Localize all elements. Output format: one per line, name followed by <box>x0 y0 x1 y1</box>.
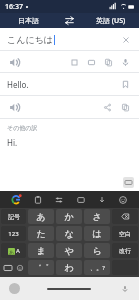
staticText: 改行 <box>119 247 131 255</box>
button[interactable]: 空白 <box>112 226 138 241</box>
staticText: ゛゜ <box>34 263 49 272</box>
staticText: わ <box>64 262 74 273</box>
button[interactable]: Keyboard tool 1 <box>30 192 45 207</box>
staticText: さ <box>92 211 102 222</box>
staticText: A <box>16 247 20 255</box>
staticText: た <box>36 228 46 239</box>
button[interactable]: Listen to source text <box>7 55 21 69</box>
staticText: 、。? <box>90 264 105 272</box>
staticText: 16:37 <box>5 2 23 12</box>
button[interactable]: 、。? <box>84 260 110 275</box>
staticText: あ <box>36 211 46 222</box>
button[interactable]: Keyboard tool 2 <box>51 192 66 207</box>
button[interactable]: Hide keyboard <box>123 177 134 188</box>
button[interactable]: Emoji <box>14 262 25 273</box>
staticText: 空白 <box>119 230 131 238</box>
button[interactable]: Clear text <box>119 33 132 46</box>
button[interactable]: ゛゜ <box>28 260 54 275</box>
button[interactable]: Keyboard tool 3 <box>73 192 88 207</box>
button[interactable]: Copy translation <box>119 101 132 114</box>
button[interactable]: た <box>28 226 54 241</box>
button[interactable]: Swap languages <box>56 13 82 28</box>
staticText: や <box>64 245 74 256</box>
button[interactable]: Listen to translation <box>7 100 21 114</box>
button[interactable]: ま <box>28 243 54 258</box>
button[interactable]: や <box>56 243 82 258</box>
staticText: Hello. <box>7 79 29 90</box>
button[interactable]: Gboard settings <box>9 192 24 207</box>
button[interactable]: 123 <box>1 226 26 241</box>
button[interactable]: あ <box>1 243 26 258</box>
button[interactable]: あ <box>28 209 54 224</box>
button[interactable]: Hi. <box>7 137 132 148</box>
button[interactable]: 英語 (US) <box>82 13 139 28</box>
staticText: あ <box>9 249 15 255</box>
button[interactable]: Keyboard tool 5 <box>115 192 130 207</box>
button[interactable]: 改行 <box>112 243 138 258</box>
button[interactable]: Home <box>47 288 91 290</box>
button[interactable]: Keyboard tool 4 <box>94 192 109 207</box>
button[interactable]: Copy <box>102 56 115 69</box>
button[interactable]: わ <box>56 260 82 275</box>
button[interactable]: 記号 <box>1 209 26 224</box>
staticText: ま <box>36 245 46 256</box>
staticText: は <box>92 228 102 239</box>
button[interactable]: Voice input <box>119 283 130 294</box>
button[interactable]: Select text <box>68 56 81 69</box>
button[interactable]: Save translation <box>119 78 132 91</box>
staticText: Hi. <box>7 137 18 148</box>
staticText: こんにちは <box>7 34 54 45</box>
button[interactable]: は <box>84 226 110 241</box>
staticText: 英語 (US) <box>96 16 126 26</box>
staticText: 123 <box>8 230 19 238</box>
staticText: 記号 <box>8 213 20 221</box>
button[interactable]: 日本語 <box>0 13 56 28</box>
staticText: ら <box>92 245 102 256</box>
button[interactable]: Backspace <box>112 209 138 224</box>
button[interactable]: な <box>56 226 82 241</box>
staticText: か <box>64 211 74 222</box>
button[interactable]: Share <box>101 101 114 114</box>
button[interactable]: Assistant <box>9 283 20 294</box>
button[interactable]: Fullscreen <box>85 56 98 69</box>
button[interactable]: ら <box>84 243 110 258</box>
staticText: その他の訳 <box>7 124 38 132</box>
button[interactable]: Keyboard layout <box>2 262 13 273</box>
staticText: 日本語 <box>18 16 39 25</box>
staticText: な <box>64 228 74 239</box>
button[interactable]: か <box>56 209 82 224</box>
button[interactable]: Microphone <box>119 56 132 69</box>
button[interactable]: さ <box>84 209 110 224</box>
